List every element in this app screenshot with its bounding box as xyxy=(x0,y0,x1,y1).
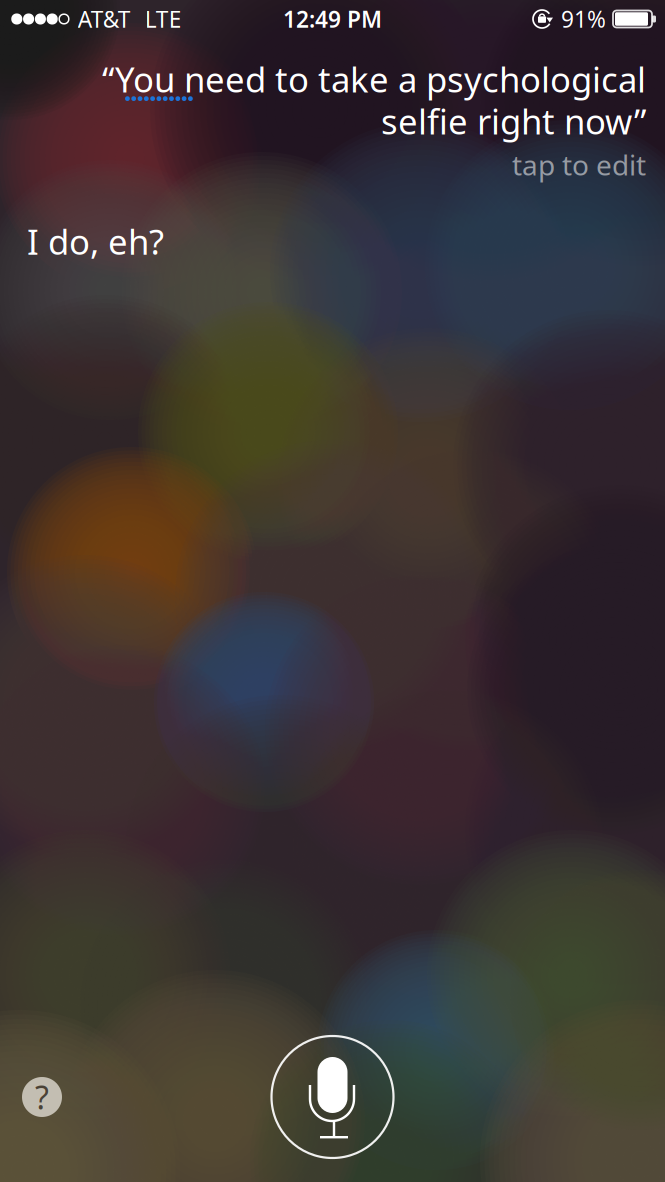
staticText: 91% xyxy=(561,4,606,34)
staticText: tap to edit xyxy=(512,146,646,183)
staticText: I do, eh? xyxy=(27,218,164,264)
button[interactable]: Talk to Siri xyxy=(270,1035,394,1159)
button[interactable]: Siri help xyxy=(22,1077,62,1117)
staticText: LTE xyxy=(145,4,182,34)
staticText: AT&T xyxy=(78,4,131,34)
staticText: “You need to take a psychological xyxy=(102,56,646,102)
staticText: 12:49 PM xyxy=(283,4,382,34)
button[interactable]: “You need to take a psychological xyxy=(0,38,665,183)
staticText: ? xyxy=(35,1076,49,1118)
staticText: selfie right now” xyxy=(381,98,646,144)
